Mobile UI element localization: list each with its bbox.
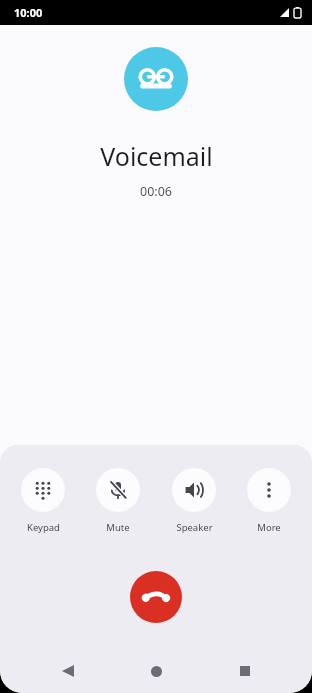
staticText: Mute [106, 521, 130, 534]
button[interactable]: Mute [86, 468, 150, 534]
button[interactable]: End call [130, 571, 182, 623]
staticText: 10:00 [14, 5, 43, 20]
button[interactable]: More [237, 468, 301, 534]
button[interactable]: Recents [224, 650, 266, 692]
button[interactable]: Speaker [162, 468, 226, 534]
button[interactable]: Keypad [11, 468, 75, 534]
staticText: Voicemail [100, 139, 213, 173]
button[interactable]: Back [47, 650, 89, 692]
button[interactable]: Home [135, 650, 177, 692]
staticText: More [257, 521, 281, 534]
staticText: 00:06 [140, 183, 172, 200]
staticText: Keypad [27, 521, 60, 534]
staticText: Speaker [176, 521, 213, 534]
